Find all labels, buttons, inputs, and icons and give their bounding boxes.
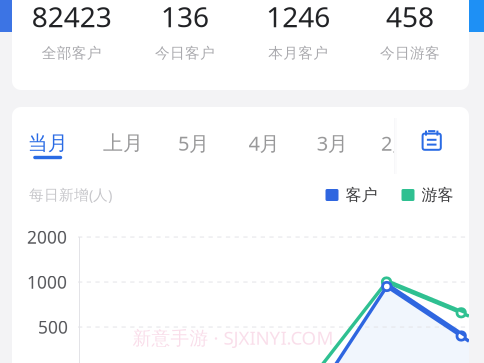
staticText: 82423	[32, 0, 112, 35]
staticText: 2月	[381, 130, 412, 156]
staticText: 上月	[103, 131, 143, 155]
staticText: 今日游客	[380, 44, 440, 62]
button[interactable]: 458	[354, 0, 466, 63]
staticText: 当月	[28, 131, 68, 155]
button[interactable]: 当月	[25, 123, 71, 163]
staticText: 1246	[266, 0, 330, 35]
staticText: 游客	[421, 185, 453, 205]
staticText: 5月	[178, 130, 209, 156]
staticText: 2000	[27, 225, 67, 248]
staticText: 全部客户	[42, 44, 102, 62]
button[interactable]: 报表	[400, 112, 463, 168]
staticText: 3月	[317, 130, 348, 156]
staticText: 客户	[345, 185, 377, 205]
staticText: 4月	[248, 130, 279, 156]
staticText: 500	[38, 315, 68, 338]
button[interactable]: 82423	[16, 0, 128, 63]
staticText: 本月客户	[268, 44, 328, 62]
staticText: 136	[161, 0, 209, 35]
staticText: 458	[386, 0, 434, 35]
button[interactable]: 1246	[242, 0, 354, 63]
button[interactable]: 4月	[241, 123, 287, 163]
button[interactable]: 2月	[373, 123, 419, 163]
button[interactable]: 5月	[170, 123, 216, 163]
button[interactable]: 136	[129, 0, 241, 63]
staticText: 1000	[27, 270, 67, 293]
staticText: 每日新增(人)	[29, 185, 112, 204]
staticText: 今日客户	[155, 44, 215, 62]
button[interactable]: 3月	[309, 123, 355, 163]
button[interactable]: 上月	[100, 123, 146, 163]
staticText: 新意手游 · SJXINYI.COM	[132, 325, 333, 350]
